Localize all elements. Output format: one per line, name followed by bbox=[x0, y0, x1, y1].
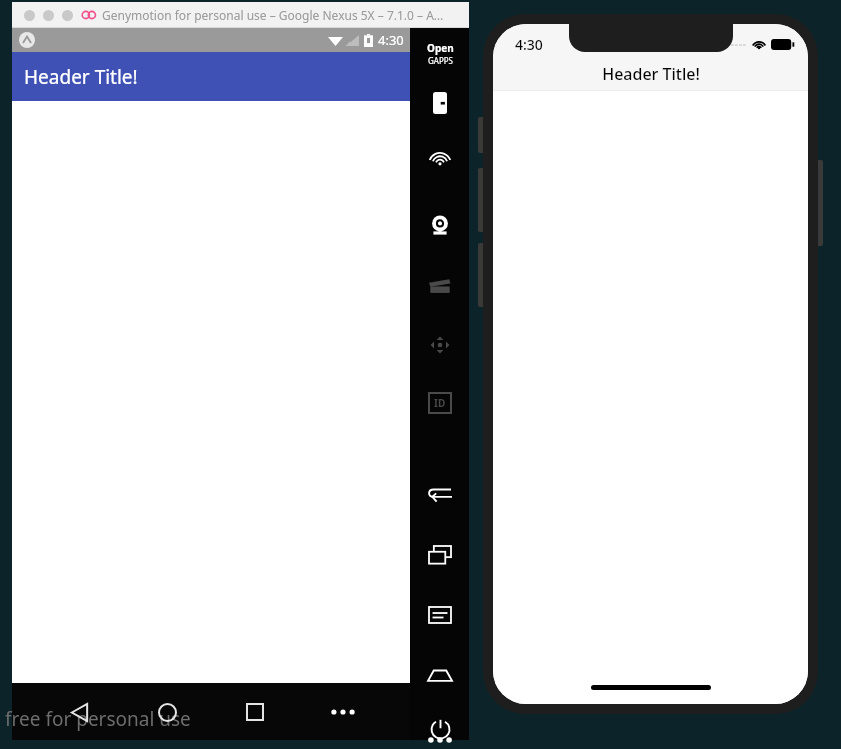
button[interactable]: Open GAPPS bbox=[417, 38, 463, 68]
button[interactable]: Power bbox=[423, 718, 457, 740]
button[interactable]: Volume up bbox=[478, 168, 485, 232]
staticText: Header Title! bbox=[602, 63, 700, 85]
button[interactable]: Power bbox=[816, 160, 823, 246]
staticText: 4:30 bbox=[378, 31, 404, 49]
button[interactable]: Back bbox=[423, 478, 457, 512]
staticText: Header Title! bbox=[24, 64, 138, 90]
staticText: ID bbox=[434, 396, 446, 410]
button[interactable]: Window button bbox=[62, 10, 73, 21]
button[interactable]: Camera bbox=[423, 208, 457, 242]
button[interactable]: GPS bbox=[423, 148, 457, 182]
button[interactable]: Accelerometer bbox=[423, 328, 457, 362]
button[interactable]: More options bbox=[322, 691, 364, 733]
staticText: 4:30 bbox=[515, 35, 543, 54]
button[interactable]: Window button bbox=[24, 10, 35, 21]
button[interactable]: Copy paste bbox=[423, 538, 457, 572]
button[interactable]: Back bbox=[58, 691, 100, 733]
button[interactable]: Screen recorder bbox=[423, 268, 457, 302]
button[interactable]: Volume down bbox=[478, 243, 485, 307]
button[interactable]: Silent switch bbox=[478, 117, 485, 153]
staticText: Genymotion for personal use – Google Nex… bbox=[102, 7, 444, 23]
staticText: Open bbox=[427, 41, 454, 55]
button[interactable]: Recent apps bbox=[234, 691, 276, 733]
button[interactable]: Home bbox=[146, 691, 188, 733]
button[interactable]: Volume bbox=[423, 658, 457, 692]
button[interactable]: Header Title! bbox=[12, 52, 410, 101]
staticText: free for personal use bbox=[5, 706, 191, 732]
button[interactable]: Window button bbox=[43, 10, 54, 21]
button[interactable]: Identifiers bbox=[423, 386, 457, 420]
staticText: GAPPS bbox=[428, 55, 454, 66]
button[interactable]: Battery bbox=[423, 86, 457, 120]
button[interactable]: Keyboard bbox=[423, 598, 457, 632]
